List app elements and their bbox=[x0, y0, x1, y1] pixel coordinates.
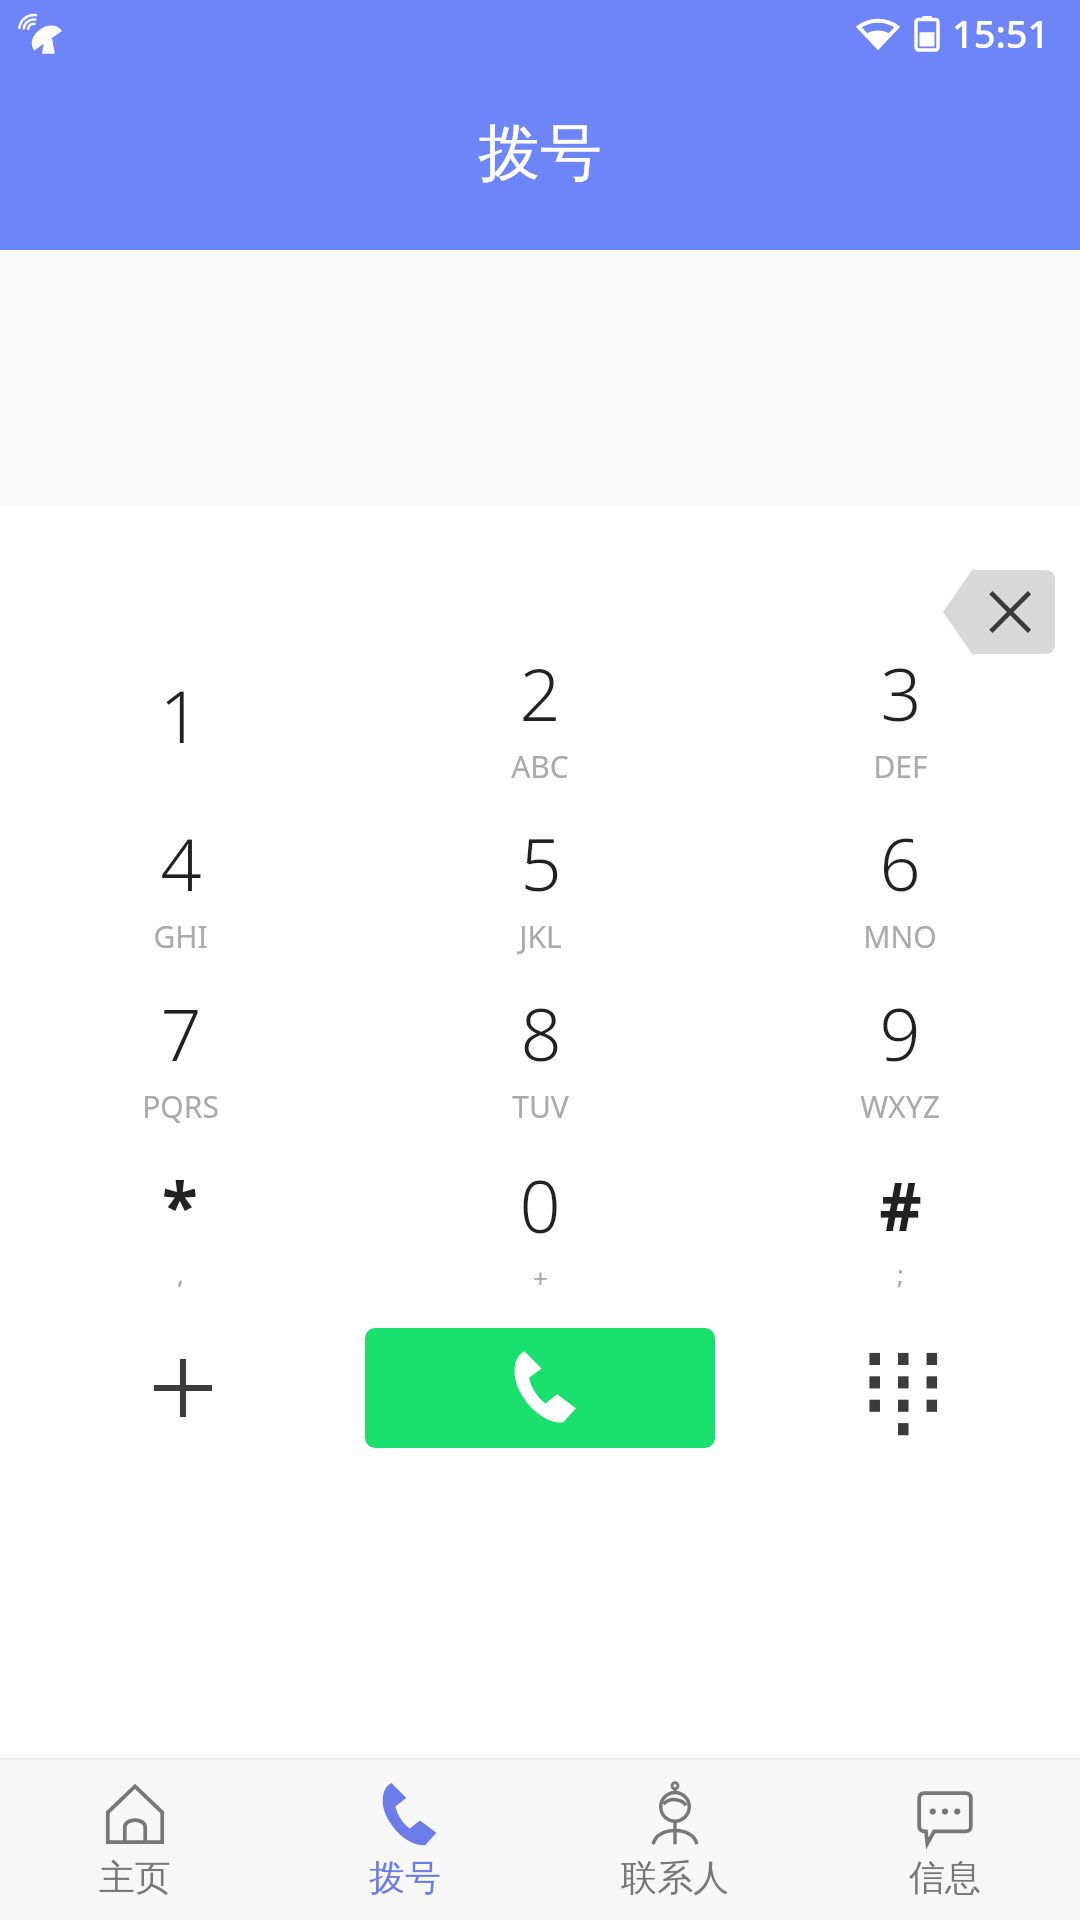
button[interactable]: 信息 bbox=[810, 1760, 1080, 1920]
button[interactable]: Add bbox=[0, 1320, 365, 1455]
staticText: + bbox=[533, 1260, 548, 1295]
staticText: MNO bbox=[863, 916, 937, 957]
staticText: ABC bbox=[511, 746, 569, 787]
button[interactable]: 5 bbox=[360, 800, 720, 970]
button[interactable]: 0 bbox=[360, 1140, 720, 1310]
staticText: 主页 bbox=[99, 1855, 171, 1900]
staticText: 4 bbox=[160, 814, 202, 912]
staticText: 拨号 bbox=[369, 1855, 441, 1900]
button[interactable]: * bbox=[0, 1140, 360, 1310]
button[interactable]: Delete bbox=[943, 570, 1055, 654]
button[interactable]: 7 bbox=[0, 970, 360, 1140]
staticText: 信息 bbox=[909, 1855, 981, 1900]
staticText: * bbox=[162, 1160, 198, 1250]
staticText: 联系人 bbox=[621, 1855, 729, 1900]
staticText: 15:51 bbox=[952, 7, 1050, 59]
staticText: PQRS bbox=[142, 1086, 219, 1127]
staticText: DEF bbox=[873, 746, 928, 787]
staticText: 3 bbox=[880, 644, 922, 742]
button[interactable]: 3 bbox=[720, 630, 1080, 800]
button[interactable]: # bbox=[720, 1140, 1080, 1310]
button[interactable]: 联系人 bbox=[540, 1760, 810, 1920]
staticText: # bbox=[879, 1160, 922, 1250]
button[interactable]: 9 bbox=[720, 970, 1080, 1140]
button[interactable]: 4 bbox=[0, 800, 360, 970]
button[interactable]: Keypad bbox=[715, 1320, 1080, 1455]
button[interactable]: Call bbox=[365, 1328, 715, 1448]
staticText: 0 bbox=[519, 1156, 561, 1254]
staticText: , bbox=[177, 1256, 184, 1291]
button[interactable]: 6 bbox=[720, 800, 1080, 970]
button[interactable]: 主页 bbox=[0, 1760, 270, 1920]
staticText: 2 bbox=[519, 644, 561, 742]
button[interactable]: 1 bbox=[0, 630, 360, 800]
button[interactable]: 2 bbox=[360, 630, 720, 800]
staticText: ; bbox=[897, 1256, 904, 1291]
staticText: 6 bbox=[879, 814, 921, 912]
button[interactable]: 拨号 bbox=[270, 1760, 540, 1920]
staticText: TUV bbox=[512, 1086, 569, 1127]
staticText: 拨号 bbox=[478, 114, 602, 192]
staticText: 5 bbox=[520, 814, 562, 912]
staticText: 9 bbox=[879, 984, 921, 1082]
staticText: JKL bbox=[519, 916, 562, 957]
staticText: WXYZ bbox=[860, 1086, 940, 1127]
staticText: 8 bbox=[520, 984, 562, 1082]
staticText: 1 bbox=[159, 666, 201, 764]
button[interactable]: 8 bbox=[360, 970, 720, 1140]
staticText: GHI bbox=[153, 916, 208, 957]
staticText: 7 bbox=[160, 984, 202, 1082]
